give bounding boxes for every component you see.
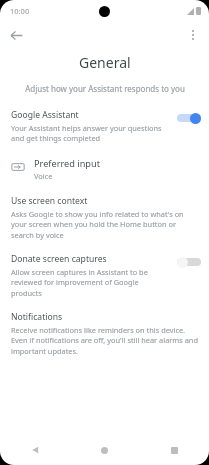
- button[interactable]: Off: [177, 256, 201, 268]
- button[interactable]: Donate screen captures: [0, 251, 209, 300]
- staticText: Receive notifications like reminders on …: [11, 325, 199, 356]
- staticText: Allow screen captures in Assistant to be…: [11, 267, 171, 298]
- staticText: Asks Google to show you info related to …: [11, 209, 199, 240]
- button[interactable]: More options: [181, 23, 205, 47]
- staticText: Use screen context: [11, 195, 88, 207]
- staticText: Donate screen captures: [11, 253, 107, 265]
- button[interactable]: Back: [0, 435, 69, 465]
- button[interactable]: Recent apps: [139, 435, 209, 465]
- staticText: Voice: [34, 171, 53, 181]
- button[interactable]: Back: [4, 23, 28, 47]
- staticText: 10:00: [10, 6, 30, 16]
- staticText: General: [79, 53, 131, 72]
- button[interactable]: Preferred input: [0, 155, 209, 183]
- staticText: Preferred input: [34, 157, 101, 170]
- staticText: Notifications: [11, 311, 63, 323]
- button[interactable]: Notifications: [0, 309, 209, 358]
- button[interactable]: Use screen context: [0, 193, 209, 242]
- staticText: Google Assistant: [11, 109, 79, 121]
- button[interactable]: Home: [69, 435, 139, 465]
- button[interactable]: On: [177, 112, 201, 124]
- staticText: Your Assistant helps answer your questio…: [11, 123, 171, 143]
- staticText: Adjust how your Assistant responds to yo…: [25, 83, 185, 94]
- button[interactable]: Google Assistant: [0, 107, 209, 145]
